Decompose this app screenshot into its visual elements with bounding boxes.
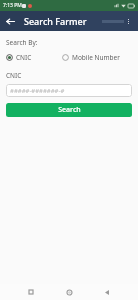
staticText: CNIC <box>16 53 32 62</box>
button[interactable]: More options <box>118 11 138 31</box>
button[interactable]: Back <box>0 11 20 31</box>
button[interactable]: #####-#######-# <box>6 84 132 97</box>
button[interactable]: Home <box>62 285 76 299</box>
button[interactable]: CNIC <box>6 52 62 63</box>
staticText: Search Farmer <box>24 15 87 27</box>
staticText: CNIC <box>6 71 22 80</box>
button[interactable]: Back <box>100 285 114 299</box>
button[interactable]: Mobile Number <box>62 52 120 63</box>
staticText: Search <box>58 105 81 115</box>
staticText: 7:13 PM <box>3 2 22 9</box>
staticText: Search By: <box>6 38 38 47</box>
button[interactable]: Recent apps <box>24 285 38 299</box>
button[interactable]: Search <box>6 103 132 117</box>
staticText: Mobile Number <box>72 53 120 62</box>
staticText: #####-#######-# <box>10 87 65 95</box>
